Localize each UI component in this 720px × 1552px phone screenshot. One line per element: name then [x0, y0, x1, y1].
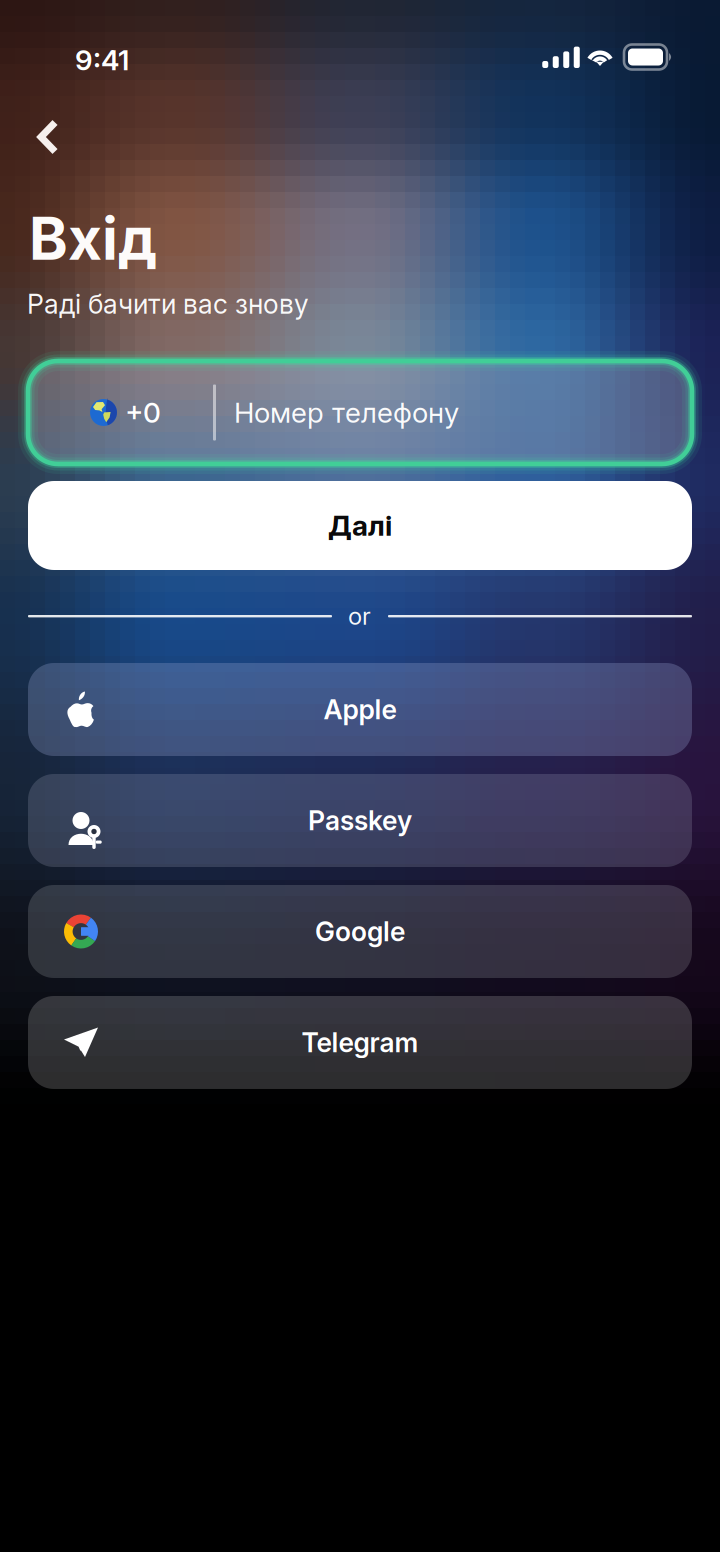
- button[interactable]: Passkey: [28, 774, 692, 867]
- staticText: 9:41: [75, 43, 129, 77]
- button[interactable]: Далі: [28, 481, 692, 570]
- staticText: or: [348, 601, 371, 630]
- button[interactable]: Google: [28, 885, 692, 978]
- button[interactable]: Apple: [28, 663, 692, 756]
- staticText: Telegram: [301, 1026, 418, 1059]
- staticText: Google: [315, 915, 405, 948]
- button[interactable]: Telegram: [28, 996, 692, 1089]
- staticText: Номер телефону: [234, 396, 459, 429]
- button[interactable]: Back: [18, 107, 78, 167]
- staticText: +0: [125, 396, 161, 429]
- staticText: Вхід: [29, 203, 157, 274]
- button[interactable]: +0: [28, 361, 692, 464]
- staticText: Apple: [323, 693, 396, 726]
- staticText: Далі: [328, 509, 392, 542]
- staticText: Passkey: [308, 804, 412, 837]
- staticText: Раді бачити вас знову: [27, 288, 309, 320]
